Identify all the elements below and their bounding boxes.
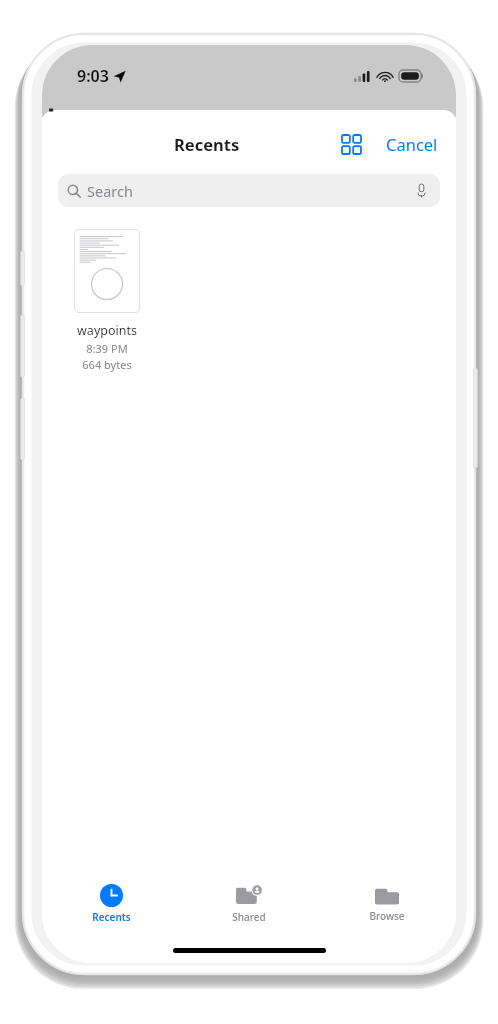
staticText: Recents [174,133,240,155]
button[interactable]: Voice search [411,181,431,201]
staticText: Browse [369,909,405,923]
button[interactable]: Browse [318,882,456,927]
button[interactable]: Cancel [382,127,442,161]
button[interactable]: Shared [180,881,318,928]
staticText: Search [87,181,133,201]
staticText: waypoints [77,322,137,339]
staticText: Cancel [386,133,438,155]
staticText: 8:39 PM [86,341,128,356]
button[interactable]: waypoints [68,229,146,372]
staticText: Shared [232,910,266,924]
staticText: 9:03 [77,65,109,87]
staticText: Recents [92,910,131,924]
button[interactable]: Change view [334,127,368,161]
button[interactable]: Recents [42,880,180,928]
staticText: 664 bytes [82,357,132,372]
button[interactable]: Search [58,174,440,207]
